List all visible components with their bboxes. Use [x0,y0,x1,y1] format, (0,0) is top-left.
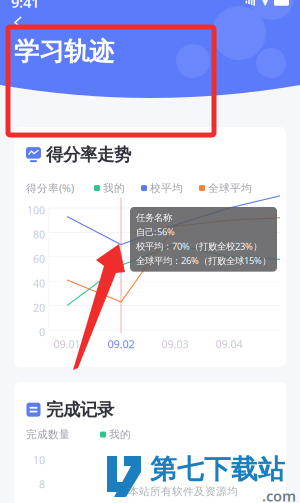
staticText: 完成数量 [26,428,70,441]
staticText: 40 [33,276,45,290]
staticText: .com [262,486,296,503]
staticText: 09.04 [215,337,242,351]
staticText: 20 [33,301,45,315]
staticText: 09.01 [53,337,80,351]
staticText: 80 [33,227,45,242]
staticText: 得分率(%) [26,181,74,195]
staticText: ▾ [262,0,268,9]
staticText: 得分率走势 [46,144,131,165]
staticText: 本站所有软件及资源均 [128,485,238,498]
staticText: 60 [33,252,45,266]
staticText: 10 [33,453,45,467]
staticText: 9:41 [11,0,39,12]
button[interactable]: Back [0,11,37,34]
staticText: 09.03 [161,337,188,351]
staticText: 自己:56% [136,225,175,238]
staticText: 全球平均 [208,181,252,195]
staticText: 8 [39,477,45,491]
staticText: 100 [27,203,45,217]
staticText: 完成记录 [46,399,114,420]
staticText: 我的 [109,428,131,441]
staticText: 全球平均：26%（打败全球15%） [136,254,271,267]
staticText: 第七下载站 [150,453,285,486]
staticText: 学习轨迹 [14,36,114,67]
staticText: 09.02 [107,337,134,351]
staticText: 校平均：70%（打败全校23%） [136,240,262,252]
staticText: 校平均 [150,181,183,195]
staticText: 任务名称 [136,212,172,223]
staticText: 0 [39,325,45,339]
staticText: 我的 [103,181,125,195]
